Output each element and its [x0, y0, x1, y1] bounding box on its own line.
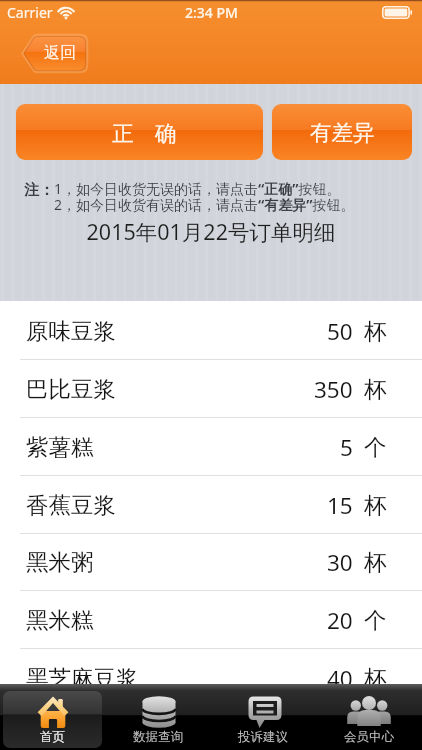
- button[interactable]: 正 确: [16, 104, 263, 160]
- button[interactable]: 原味豆浆: [0, 302, 422, 360]
- staticText: 2:34 PM: [185, 3, 238, 22]
- button[interactable]: 数据查询: [108, 691, 207, 748]
- staticText: 巴比豆浆: [26, 375, 116, 403]
- staticText: 数据查询: [133, 729, 183, 745]
- button[interactable]: 香蕉豆浆: [0, 476, 422, 534]
- staticText: 首页: [40, 729, 65, 745]
- staticText: 5: [340, 432, 353, 463]
- staticText: 杯: [364, 375, 387, 403]
- button[interactable]: 投诉建议: [213, 691, 313, 748]
- staticText: 2015年01月22号订单明细: [0, 217, 422, 246]
- button[interactable]: 有差异: [272, 104, 412, 160]
- staticText: 1，如今日收货无误的话，请点击“正确”按钮。: [54, 179, 341, 198]
- staticText: 黑芝麻豆浆: [26, 664, 139, 692]
- staticText: 黑米粥: [26, 548, 94, 576]
- staticText: 个: [364, 433, 387, 461]
- staticText: Carrier: [7, 3, 53, 22]
- staticText: 投诉建议: [238, 729, 288, 745]
- button[interactable]: 黑米粥: [0, 533, 422, 591]
- staticText: 会员中心: [344, 729, 394, 745]
- staticText: 返回: [44, 43, 76, 63]
- staticText: 原味豆浆: [26, 317, 116, 345]
- staticText: 注：: [24, 181, 54, 200]
- staticText: 黑米糕: [26, 606, 94, 634]
- staticText: 30: [327, 547, 353, 578]
- staticText: 杯: [364, 317, 387, 345]
- staticText: 50: [327, 316, 353, 347]
- staticText: 20: [327, 605, 353, 636]
- button[interactable]: 首页: [3, 691, 102, 748]
- staticText: 杯: [364, 664, 387, 692]
- staticText: 15: [327, 490, 353, 521]
- button[interactable]: 黑芝麻豆浆: [0, 649, 422, 707]
- staticText: 正 确: [112, 118, 177, 147]
- staticText: 350: [314, 374, 353, 405]
- staticText: 杯: [364, 548, 387, 576]
- staticText: 杯: [364, 491, 387, 519]
- button[interactable]: 会员中心: [319, 691, 419, 748]
- staticText: 香蕉豆浆: [26, 491, 116, 519]
- staticText: 紫薯糕: [26, 433, 94, 461]
- button[interactable]: 巴比豆浆: [0, 360, 422, 418]
- button[interactable]: 返回: [21, 35, 87, 72]
- staticText: 个: [364, 606, 387, 634]
- staticText: 2，如今日收货有误的话，请点击“有差异”按钮。: [54, 195, 355, 214]
- button[interactable]: 紫薯糕: [0, 418, 422, 476]
- staticText: 有差异: [310, 119, 375, 146]
- button[interactable]: 黑米糕: [0, 591, 422, 649]
- staticText: 40: [327, 663, 353, 694]
